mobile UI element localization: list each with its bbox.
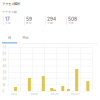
button[interactable]: 日 xyxy=(2,33,17,42)
staticText: 今日 xyxy=(5,21,11,25)
staticText: 508 xyxy=(68,16,77,22)
staticText: 70 xyxy=(2,46,6,49)
staticText: 59 xyxy=(26,16,32,22)
staticText: アクセス数 xyxy=(2,9,17,14)
staticText: 10 xyxy=(2,83,5,87)
staticText: 294 xyxy=(47,16,56,22)
staticText: 60 xyxy=(2,52,6,55)
staticText: 30 xyxy=(2,71,6,74)
staticText: 50 xyxy=(2,58,6,62)
staticText: 今週 xyxy=(47,21,53,25)
staticText: 08/1 xyxy=(11,92,17,96)
staticText: 08/22 xyxy=(71,92,80,96)
staticText: 今月 xyxy=(68,21,74,25)
staticText: 20 xyxy=(2,77,6,80)
staticText: 時間 xyxy=(22,35,28,40)
staticText: 08/15 xyxy=(51,92,59,96)
staticText: 昨日 xyxy=(26,21,32,25)
staticText: 17 xyxy=(5,16,10,22)
staticText: 0 xyxy=(2,90,4,93)
staticText: アクセス解析 xyxy=(2,1,20,6)
staticText: 日 xyxy=(8,35,11,40)
staticText: 08/8 xyxy=(31,92,38,96)
button[interactable]: 時間 xyxy=(18,33,33,42)
staticText: 40 xyxy=(2,65,6,68)
